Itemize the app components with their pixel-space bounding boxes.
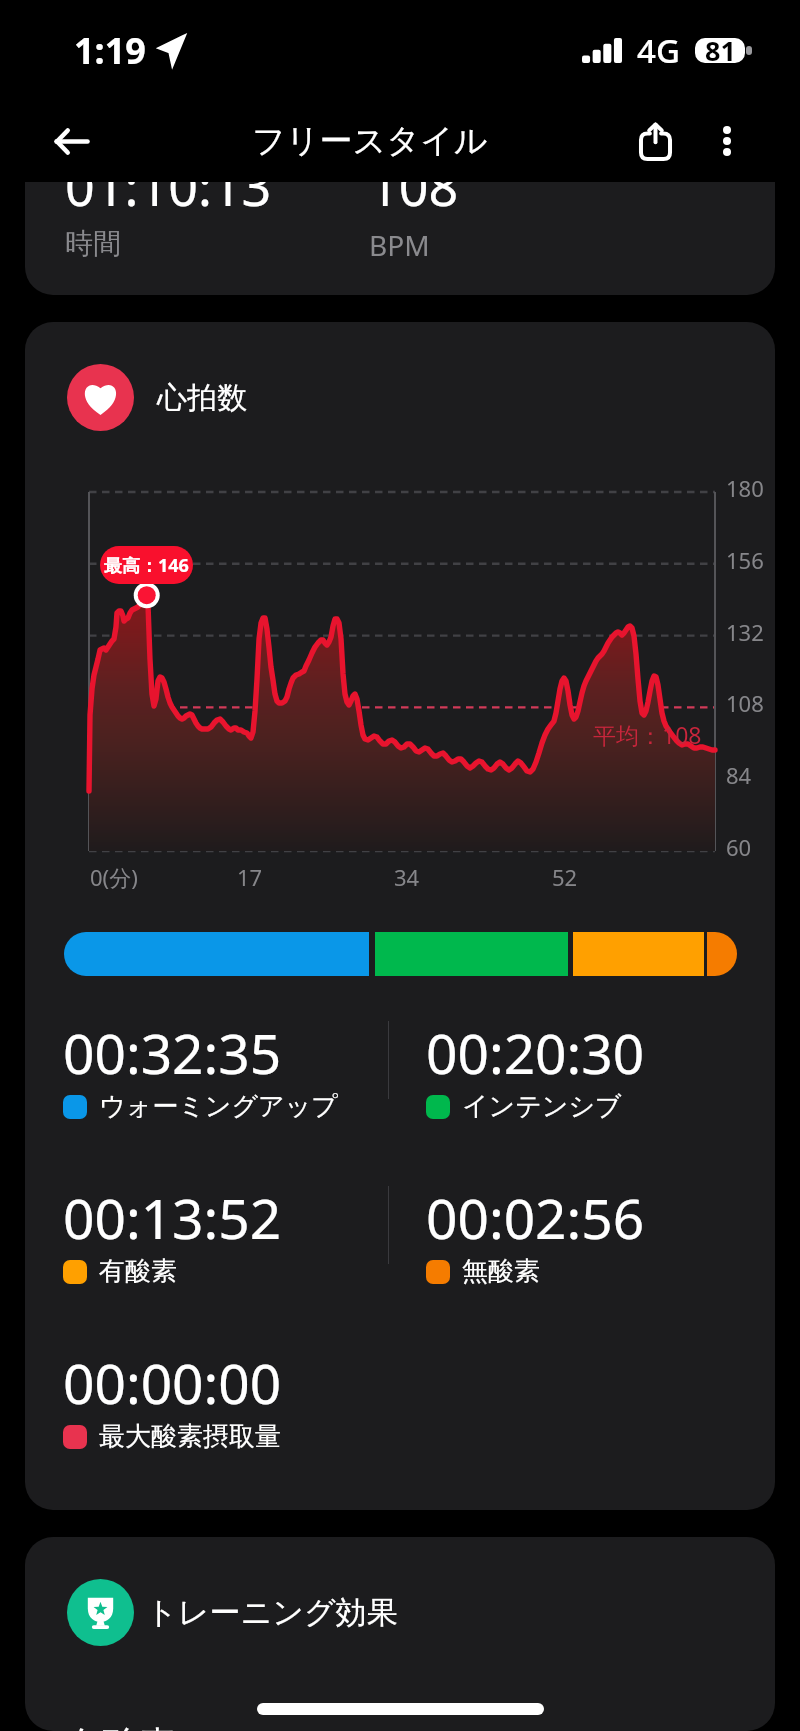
staticText: 00:00:00 bbox=[63, 1345, 282, 1420]
button[interactable]: 00:02:56 bbox=[426, 1180, 645, 1288]
staticText: 180 bbox=[726, 473, 764, 503]
staticText: 108 bbox=[369, 182, 459, 221]
button[interactable]: Share bbox=[619, 105, 691, 177]
staticText: 最高：146 bbox=[104, 553, 189, 578]
button[interactable]: 00:20:30 bbox=[426, 1015, 645, 1123]
staticText: ウォーミングアップ bbox=[99, 1090, 338, 1123]
button[interactable]: 00:00:00 bbox=[63, 1345, 282, 1453]
staticText: 81 bbox=[705, 32, 736, 69]
staticText: 01:10:13 bbox=[65, 182, 272, 221]
staticText: 108 bbox=[726, 688, 764, 718]
staticText: 有酸素 bbox=[99, 1255, 177, 1288]
staticText: 34 bbox=[394, 862, 420, 892]
button[interactable]: 心拍数 bbox=[67, 364, 247, 431]
staticText: BPM bbox=[369, 226, 430, 264]
staticText: 52 bbox=[552, 862, 578, 892]
staticText: トレーニング効果 bbox=[146, 1593, 398, 1632]
staticText: 60 bbox=[726, 832, 752, 862]
button[interactable]: トレーニング効果 bbox=[67, 1579, 398, 1646]
staticText: 156 bbox=[726, 545, 764, 575]
button[interactable]: 00:13:52 bbox=[63, 1180, 282, 1288]
staticText: 最大酸素摂取量 bbox=[99, 1420, 281, 1453]
button[interactable]: More options bbox=[691, 105, 763, 177]
button[interactable]: 00:32:35 bbox=[63, 1015, 338, 1123]
staticText: 0(分) bbox=[90, 862, 138, 892]
staticText: 無酸素 bbox=[462, 1255, 540, 1288]
staticText: 00:32:35 bbox=[63, 1015, 282, 1090]
staticText: 132 bbox=[726, 617, 764, 647]
staticText: 00:13:52 bbox=[63, 1180, 282, 1255]
staticText: 4G bbox=[637, 28, 680, 73]
staticText: フリースタイル bbox=[252, 120, 488, 162]
staticText: インテンシブ bbox=[462, 1090, 622, 1123]
staticText: 平均：108 bbox=[593, 719, 702, 750]
staticText: 00:02:56 bbox=[426, 1180, 645, 1255]
button[interactable]: Back bbox=[36, 105, 108, 177]
staticText: 1:19 bbox=[74, 26, 146, 75]
staticText: 17 bbox=[237, 862, 263, 892]
staticText: 心拍数 bbox=[157, 379, 247, 417]
staticText: 00:20:30 bbox=[426, 1015, 645, 1090]
button[interactable]: 01:10:13 bbox=[25, 182, 775, 295]
staticText: 84 bbox=[726, 760, 752, 790]
staticText: 有酸素：2.4 bbox=[65, 1718, 266, 1731]
staticText: 時間 bbox=[65, 226, 121, 261]
